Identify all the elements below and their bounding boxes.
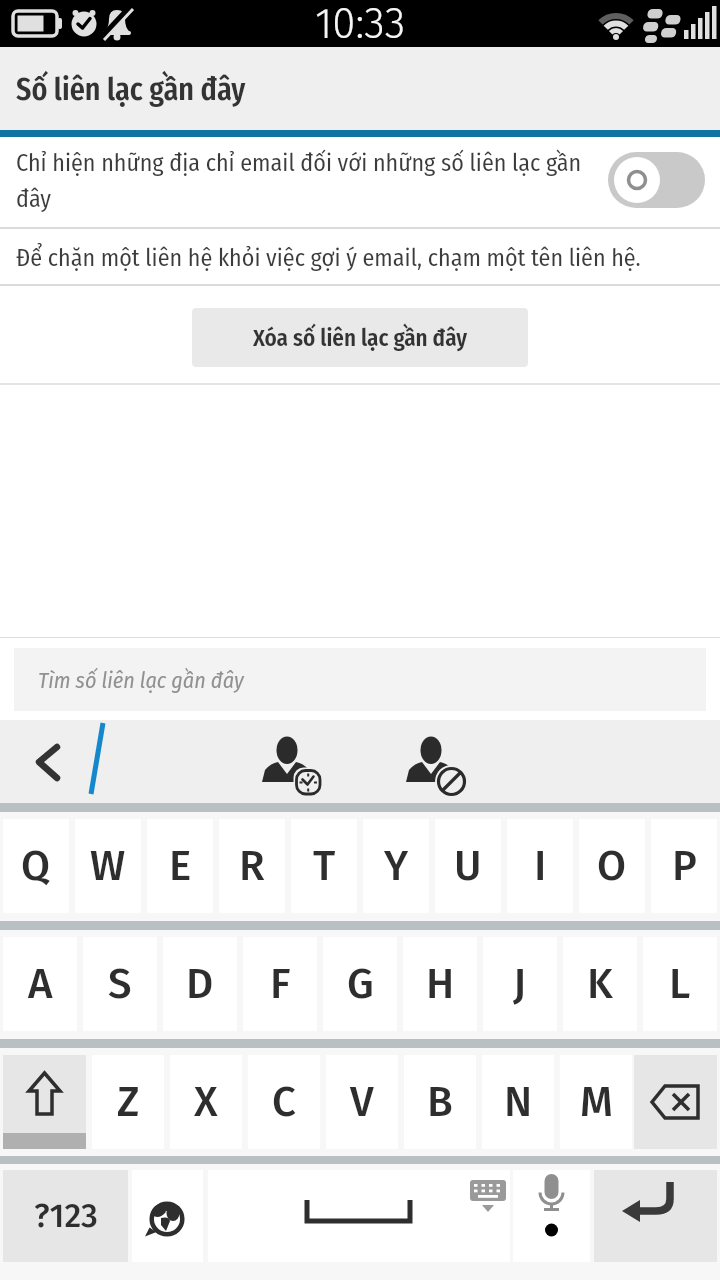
staticText: R <box>239 841 265 891</box>
button[interactable] <box>594 1170 717 1262</box>
button[interactable] <box>634 1055 717 1149</box>
staticText: Chỉ hiện những địa chỉ email đối với nhữ… <box>16 149 601 213</box>
button[interactable]: Chỉ hiện những địa chỉ email đối với nhữ… <box>0 137 720 227</box>
button[interactable]: D <box>163 937 237 1031</box>
button[interactable]: Y <box>363 819 429 913</box>
button[interactable]: Q <box>3 819 69 913</box>
button[interactable]: ?123 <box>3 1170 128 1262</box>
button[interactable]: T <box>291 819 357 913</box>
staticText: D <box>186 959 214 1009</box>
staticText: Tìm số liên lạc gần đây <box>38 667 244 693</box>
button[interactable]: Xóa số liên lạc gần đây <box>192 308 528 367</box>
button[interactable]: K <box>563 937 637 1031</box>
staticText: Q <box>21 841 51 891</box>
staticText: Y <box>384 841 409 891</box>
staticText: V <box>350 1077 374 1127</box>
button[interactable]: W <box>75 819 141 913</box>
staticText: M <box>580 1077 613 1127</box>
staticText: I <box>534 841 547 891</box>
staticText: X <box>194 1077 218 1127</box>
button[interactable]: A <box>3 937 77 1031</box>
button[interactable]: O <box>579 819 645 913</box>
button[interactable]: P <box>651 819 717 913</box>
staticText: Z <box>117 1077 140 1127</box>
button[interactable]: V <box>326 1055 398 1149</box>
staticText: F <box>270 959 291 1009</box>
button[interactable]: E <box>147 819 213 913</box>
button[interactable]: J <box>483 937 557 1031</box>
button[interactable]: Tìm số liên lạc gần đây <box>14 648 706 711</box>
staticText: G <box>347 959 374 1009</box>
staticText: S <box>108 959 132 1009</box>
button[interactable] <box>132 1170 203 1262</box>
staticText: W <box>90 841 126 891</box>
staticText: E <box>169 841 192 891</box>
button[interactable] <box>513 1170 590 1262</box>
staticText: Xóa số liên lạc gần đây <box>253 324 468 352</box>
staticText: L <box>669 959 691 1009</box>
button[interactable]: G <box>323 937 397 1031</box>
staticText: Để chặn một liên hệ khỏi việc gợi ý emai… <box>16 244 641 273</box>
button[interactable]: N <box>482 1055 554 1149</box>
button[interactable]: H <box>403 937 477 1031</box>
staticText: T <box>313 841 336 891</box>
button[interactable]: C <box>248 1055 320 1149</box>
staticText: O <box>597 841 627 891</box>
button[interactable]: I <box>507 819 573 913</box>
staticText: P <box>672 841 697 891</box>
button[interactable]: Z <box>92 1055 164 1149</box>
staticText: C <box>272 1077 296 1127</box>
staticText: ?123 <box>34 1196 98 1236</box>
button[interactable]: S <box>83 937 157 1031</box>
staticText: B <box>427 1077 453 1127</box>
button[interactable]: R <box>219 819 285 913</box>
staticText: K <box>587 959 613 1009</box>
button[interactable] <box>3 1055 86 1149</box>
staticText: N <box>504 1077 533 1127</box>
button[interactable]: M <box>560 1055 632 1149</box>
staticText: A <box>28 959 53 1009</box>
staticText: U <box>454 841 482 891</box>
staticText: 10:33 <box>308 0 412 46</box>
button[interactable]: X <box>170 1055 242 1149</box>
staticText: J <box>513 959 527 1009</box>
button[interactable]: L <box>643 937 717 1031</box>
staticText: Số liên lạc gần đây <box>16 72 246 108</box>
button[interactable]: U <box>435 819 501 913</box>
button[interactable] <box>208 1170 510 1262</box>
staticText: H <box>426 959 455 1009</box>
button[interactable]: F <box>243 937 317 1031</box>
button[interactable]: B <box>404 1055 476 1149</box>
